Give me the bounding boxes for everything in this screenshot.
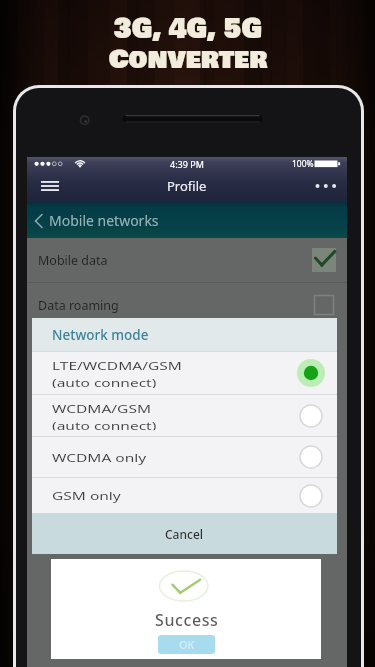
staticText: LTE/WCDMA/GSM [52, 358, 182, 373]
button[interactable]: WCDMA/GSM [32, 395, 337, 436]
button[interactable]: LTE/WCDMA/GSM [32, 352, 337, 394]
button[interactable]: Menu [33, 169, 67, 202]
staticText: (auto connect) [52, 374, 157, 388]
staticText: 100% [292, 158, 314, 170]
button[interactable]: Cancel [32, 513, 337, 554]
button[interactable]: WCDMA only [32, 437, 337, 477]
button[interactable]: More options [309, 169, 343, 202]
staticText: Success [155, 609, 219, 631]
button[interactable]: Mobile networks [27, 202, 347, 238]
staticText: WCDMA only [52, 450, 147, 465]
staticText: 3G, 4G, 5G [114, 9, 262, 49]
staticText: Profile [167, 177, 207, 195]
button[interactable]: GSM only [32, 478, 337, 513]
staticText: (auto connect) [52, 417, 157, 430]
staticText: GSM only [52, 488, 121, 503]
staticText: Data roaming [38, 297, 119, 314]
button[interactable]: OK [158, 635, 215, 654]
button[interactable]: Mobile data [27, 238, 347, 282]
staticText: Network mode [52, 326, 149, 344]
staticText: WCDMA/GSM [52, 401, 151, 416]
staticText: Mobile data [38, 252, 108, 269]
staticText: Converter [108, 41, 267, 79]
staticText: OK [179, 637, 195, 652]
staticText: 4:39 PM [170, 158, 204, 170]
staticText: Cancel [165, 526, 204, 542]
staticText: Mobile networks [49, 211, 159, 230]
button[interactable]: Data roaming [27, 283, 347, 327]
